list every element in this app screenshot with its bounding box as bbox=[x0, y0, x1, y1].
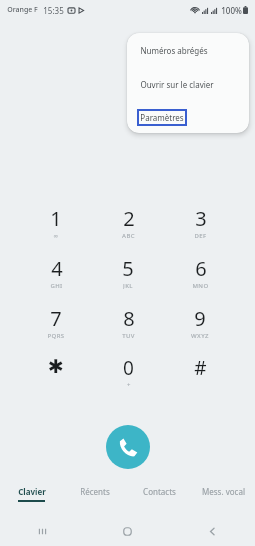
staticText: 1 bbox=[50, 205, 62, 232]
staticText: 7 bbox=[50, 305, 62, 332]
button[interactable]: Mess. vocal bbox=[191, 486, 255, 508]
button[interactable]: Home bbox=[85, 516, 170, 546]
staticText: + bbox=[127, 381, 131, 389]
staticText: PQRS bbox=[47, 332, 65, 339]
staticText: 0 bbox=[123, 355, 134, 381]
staticText: 4 bbox=[51, 255, 63, 282]
staticText: 2 bbox=[123, 205, 135, 232]
button[interactable]: Paramètres bbox=[127, 101, 249, 133]
staticText: JKL bbox=[123, 282, 133, 289]
staticText: 8 bbox=[123, 305, 135, 332]
button[interactable]: 3 bbox=[164, 205, 236, 239]
button[interactable]: Back bbox=[170, 516, 255, 546]
button[interactable]: Contacts bbox=[127, 486, 191, 508]
button[interactable]: Numéros abrégés bbox=[127, 33, 249, 67]
staticText: 6 bbox=[195, 255, 207, 282]
staticText: Mess. vocal bbox=[202, 486, 245, 497]
button[interactable]: 7 bbox=[20, 305, 92, 339]
staticText: Contacts bbox=[143, 486, 176, 497]
button[interactable]: 5 bbox=[92, 255, 164, 289]
staticText: ABC bbox=[122, 232, 135, 239]
button[interactable]: 6 bbox=[164, 255, 236, 289]
staticText: Numéros abrégés bbox=[140, 45, 208, 56]
staticText: 100% bbox=[221, 5, 242, 16]
staticText: Paramètres bbox=[140, 112, 184, 123]
button[interactable]: ✱ bbox=[20, 355, 92, 389]
staticText: Orange F bbox=[7, 5, 38, 15]
staticText: 3 bbox=[195, 205, 207, 232]
button[interactable]: Call bbox=[106, 425, 150, 469]
staticText: DEF bbox=[194, 232, 207, 239]
button[interactable]: Ouvrir sur le clavier bbox=[127, 67, 249, 101]
staticText: 9 bbox=[194, 305, 206, 332]
staticText: ✱ bbox=[48, 355, 64, 377]
button[interactable]: Clavier bbox=[0, 486, 63, 508]
button[interactable]: 1 bbox=[20, 205, 92, 239]
staticText: Clavier bbox=[18, 486, 46, 497]
button[interactable]: 4 bbox=[20, 255, 92, 289]
staticText: GHI bbox=[50, 282, 63, 289]
staticText: 5 bbox=[122, 255, 134, 282]
staticText: # bbox=[194, 355, 207, 381]
staticText: Récents bbox=[80, 486, 110, 497]
button[interactable]: 2 bbox=[92, 205, 164, 239]
button[interactable]: 8 bbox=[92, 305, 164, 339]
button[interactable]: 0 bbox=[92, 355, 164, 389]
button[interactable]: # bbox=[164, 355, 236, 389]
staticText: MNO bbox=[192, 282, 209, 289]
staticText: ∞ bbox=[53, 232, 59, 239]
staticText: WXYZ bbox=[191, 332, 209, 339]
staticText: 15:35 bbox=[43, 5, 64, 16]
button[interactable]: Recent apps bbox=[0, 516, 85, 546]
button[interactable]: Récents bbox=[63, 486, 127, 508]
button[interactable]: 9 bbox=[164, 305, 236, 339]
staticText: Ouvrir sur le clavier bbox=[140, 79, 214, 90]
staticText: TUV bbox=[122, 332, 135, 339]
